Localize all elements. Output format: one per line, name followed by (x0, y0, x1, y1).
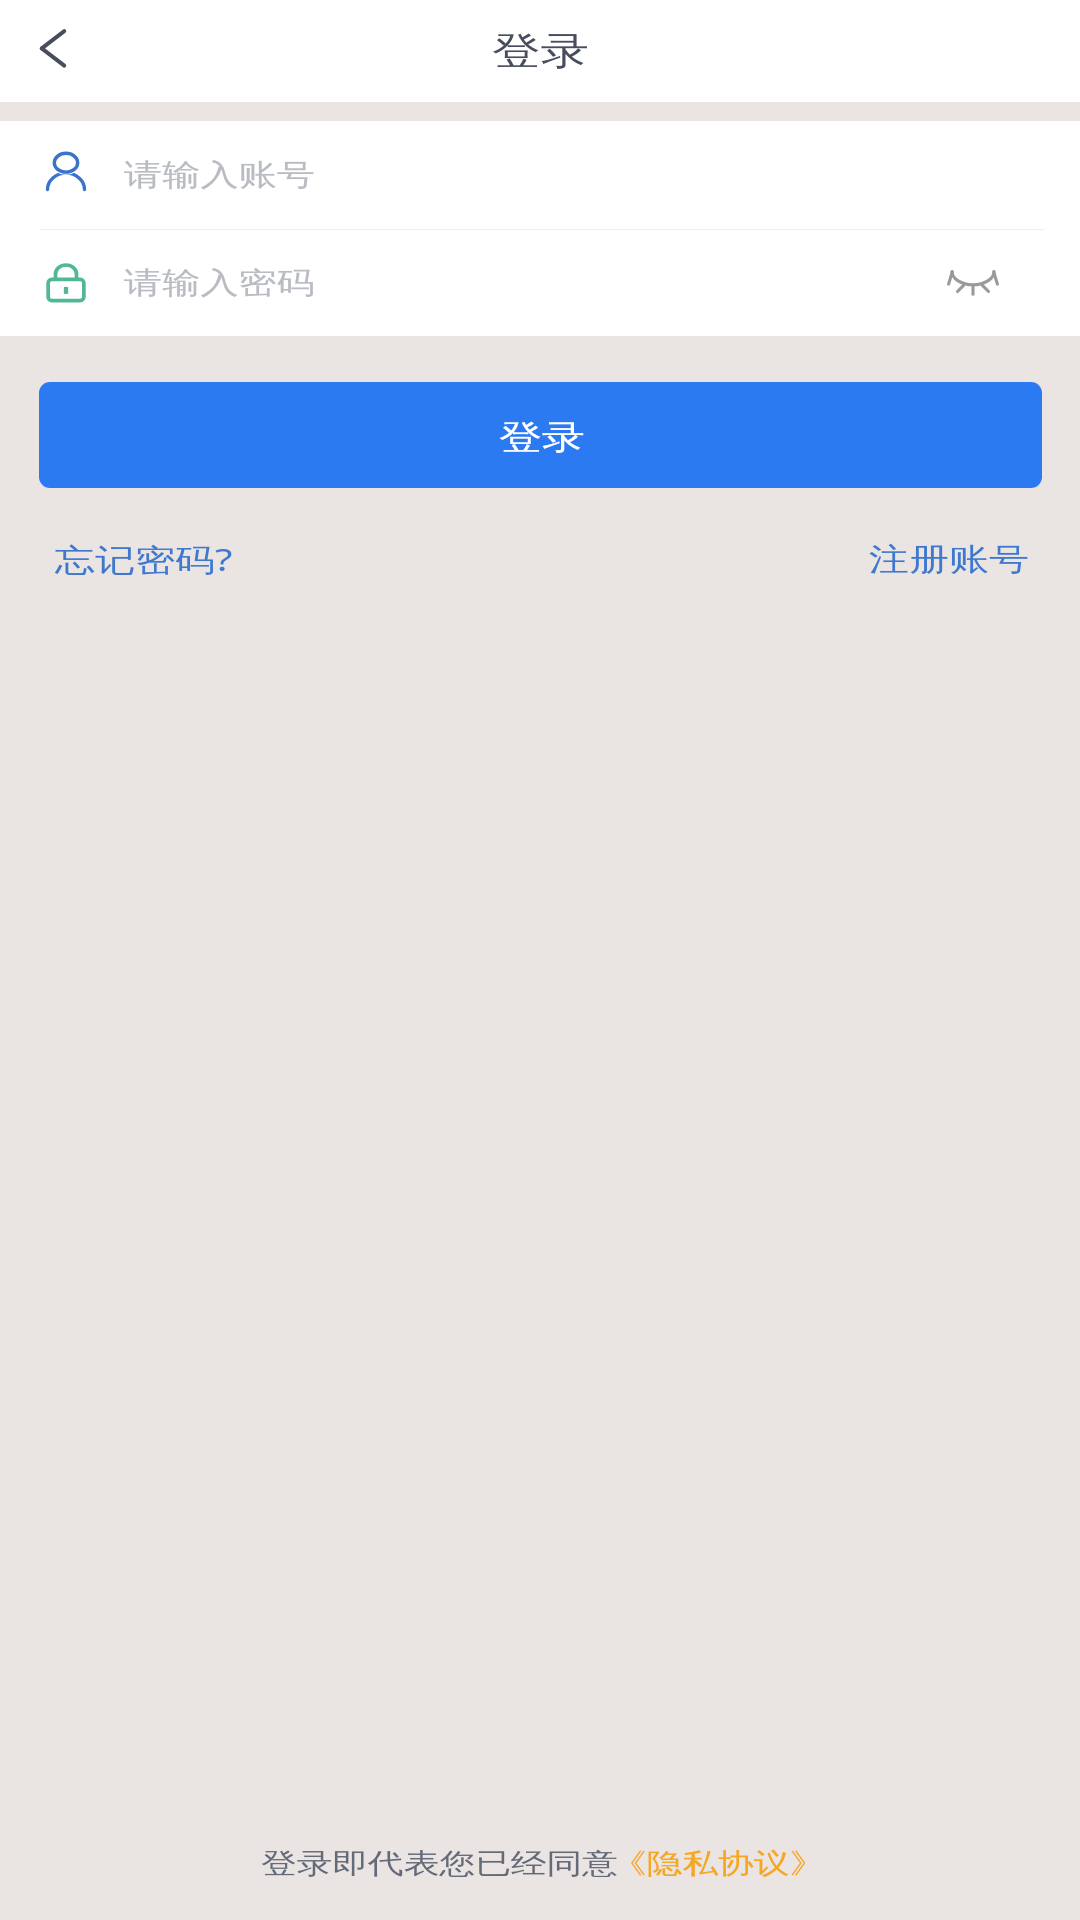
staticText: 登录即代表您已经同意 (261, 1847, 618, 1882)
staticText: 注册账号 (869, 539, 1029, 578)
button[interactable]: 忘记密码? (40, 488, 249, 606)
staticText: 请输入密码 (124, 264, 315, 302)
button[interactable]: 请输入密码 (0, 230, 1080, 335)
button[interactable]: 登录即代表您已经同意 (0, 1842, 1080, 1887)
staticText: 忘记密码? (55, 537, 233, 580)
staticText: 登录 (492, 28, 589, 75)
staticText: 《隐私协议》 (611, 1847, 826, 1882)
staticText: 登录 (499, 417, 585, 459)
staticText: 请输入账号 (124, 156, 315, 194)
button[interactable]: Show password (923, 233, 1023, 333)
button[interactable]: 注册账号 (853, 491, 1040, 604)
button[interactable]: Back (0, 3, 96, 99)
button[interactable]: 请输入账号 (0, 121, 1080, 229)
button[interactable]: 登录 (39, 382, 1042, 488)
